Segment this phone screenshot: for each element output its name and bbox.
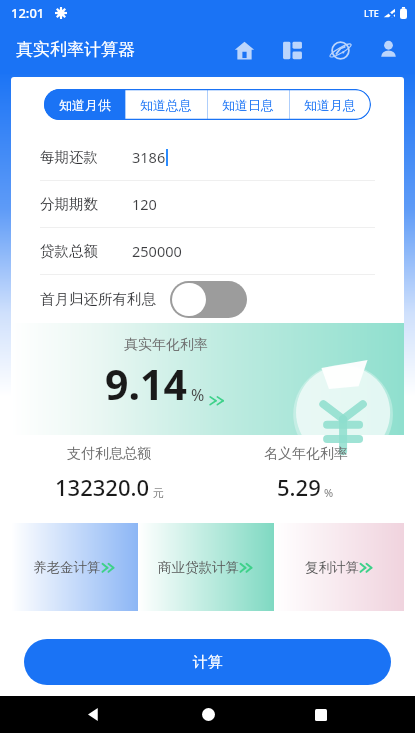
button[interactable]: 知道月息 [289, 89, 371, 120]
staticText: 知道月息 [304, 97, 356, 113]
button[interactable]: 知道总息 [125, 89, 207, 120]
staticText: 养老金计算 [33, 559, 101, 576]
staticText: 首月归还所有利息 [40, 290, 156, 308]
button[interactable]: 复利计算 [274, 523, 404, 611]
button[interactable]: Discover [325, 35, 355, 65]
staticText: 复利计算 [305, 559, 359, 576]
staticText: 知道总息 [140, 97, 192, 113]
staticText: 商业贷款计算 [158, 559, 239, 576]
staticText: 5.29 [277, 472, 321, 502]
staticText: 名义年化利率 [264, 445, 348, 463]
staticText: 贷款总额 [40, 242, 98, 260]
staticText: 真实年化利率 [124, 336, 208, 354]
button[interactable]: 分期期数 [11, 181, 404, 227]
staticText: 120 [132, 194, 157, 214]
button[interactable]: Layout [277, 35, 307, 65]
button[interactable]: Back [74, 696, 114, 733]
staticText: % [191, 384, 205, 406]
staticText: 132320.0 [55, 472, 150, 502]
staticText: % [324, 485, 334, 500]
button[interactable]: 每期还款 [11, 134, 404, 180]
staticText: 250000 [132, 241, 182, 261]
staticText: 元 [153, 486, 164, 500]
button[interactable]: 养老金计算 [11, 523, 138, 611]
staticText: 真实利率计算器 [16, 39, 135, 60]
staticText: 知道月供 [59, 97, 111, 113]
button[interactable]: 知道月供 [44, 89, 125, 120]
button[interactable]: Recents [301, 696, 341, 733]
staticText: 每期还款 [40, 148, 98, 166]
staticText: 分期期数 [40, 195, 98, 213]
button[interactable]: 计算 [24, 639, 391, 685]
button[interactable]: Profile [373, 35, 403, 65]
button[interactable]: Home [229, 35, 259, 65]
button[interactable]: 商业贷款计算 [138, 523, 274, 611]
button[interactable]: Home [188, 696, 228, 733]
button[interactable]: 贷款总额 [11, 228, 404, 274]
staticText: 知道日息 [222, 97, 274, 113]
staticText: 12:01 [11, 4, 45, 22]
staticText: 计算 [193, 653, 223, 672]
staticText: LTE [364, 7, 379, 19]
button[interactable]: 首月归还所有利息 [11, 275, 404, 323]
staticText: 9.14 [105, 356, 187, 412]
staticText: 支付利息总额 [67, 445, 151, 463]
button[interactable]: 知道日息 [207, 89, 289, 120]
staticText: 3186 [132, 147, 166, 167]
